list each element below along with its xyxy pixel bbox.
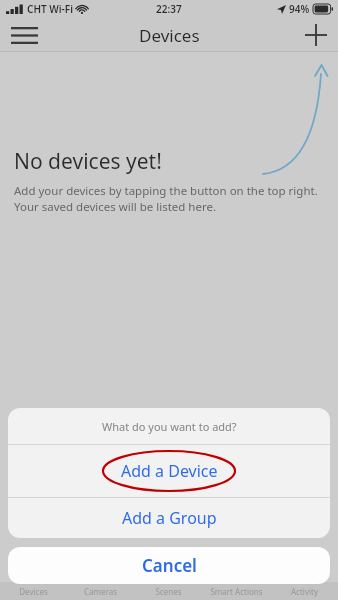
staticText: Add your devices by tapping the button o… [14, 183, 324, 214]
staticText: Add a Group [122, 507, 217, 529]
staticText: Devices [19, 586, 48, 597]
button[interactable]: Activity [270, 582, 338, 600]
button[interactable]: Add a Device [8, 445, 330, 497]
staticText: 94% [289, 2, 310, 16]
button[interactable]: Add a Group [8, 498, 330, 538]
button[interactable]: Cameras [67, 582, 134, 600]
button[interactable]: Smart Actions [202, 582, 270, 600]
staticText: Scenes [155, 586, 182, 597]
staticText: 22:37 [156, 2, 182, 16]
button[interactable]: Devices [0, 582, 67, 600]
staticText: Devices [139, 24, 200, 47]
staticText: Activity [291, 586, 318, 597]
staticText: Cancel [142, 554, 197, 577]
staticText: Add a Device [121, 460, 218, 482]
button[interactable]: Scenes [134, 582, 202, 600]
staticText: Smart Actions [210, 586, 263, 597]
button[interactable]: Cancel [8, 547, 330, 584]
button[interactable]: Add [294, 18, 338, 52]
staticText: CHT Wi-Fi [27, 2, 73, 16]
staticText: Cameras [84, 586, 117, 597]
staticText: No devices yet! [14, 147, 162, 176]
button[interactable]: Menu [0, 18, 48, 52]
staticText: What do you want to add? [102, 419, 237, 434]
